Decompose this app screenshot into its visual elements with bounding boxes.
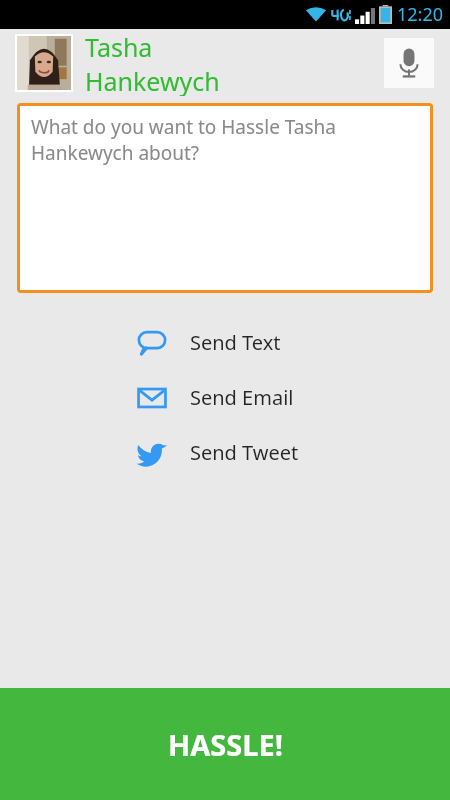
button[interactable]: Contact photo [17, 36, 71, 90]
staticText: Send Email [190, 384, 294, 411]
staticText: Send Text [190, 329, 281, 356]
button[interactable]: Send Text [0, 315, 450, 370]
staticText: Send Tweet [190, 439, 299, 466]
button[interactable]: HASSLE! [0, 688, 450, 800]
staticText: What do you want to Hassle Tasha Hankewy… [31, 114, 415, 166]
button[interactable]: What do you want to Hassle Tasha Hankewy… [17, 103, 433, 293]
staticText: Tasha Hankewych [85, 30, 234, 96]
button[interactable]: Send Email [0, 370, 450, 425]
staticText: HASSLE! [168, 725, 283, 764]
button[interactable]: Send Tweet [0, 425, 450, 480]
button[interactable]: Voice input [384, 38, 434, 88]
staticText: 12:20 [397, 2, 444, 27]
